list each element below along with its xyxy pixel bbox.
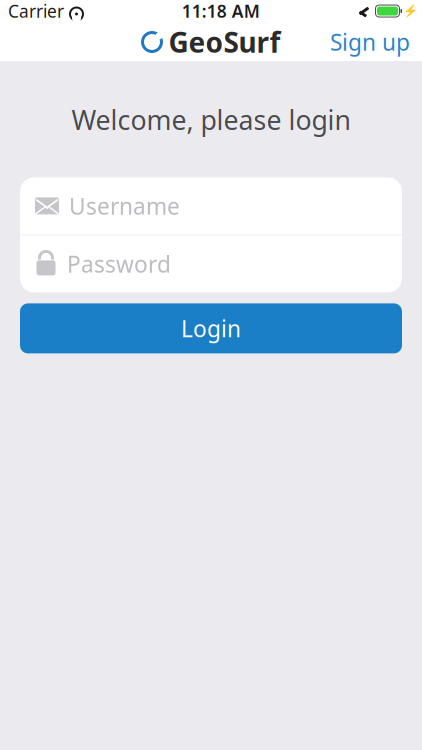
staticText: 11:18 AM — [182, 0, 260, 22]
staticText: Welcome, please login — [71, 102, 350, 137]
staticText: Sign up — [330, 27, 410, 57]
staticText: Password — [67, 249, 171, 279]
button[interactable]: Sign up — [318, 19, 422, 65]
button[interactable]: Username — [20, 177, 402, 234]
button[interactable]: Password — [20, 235, 402, 292]
button[interactable]: Login — [20, 303, 402, 353]
staticText: GeoSurf — [168, 23, 280, 61]
staticText: ⚡ — [403, 4, 418, 18]
staticText: Carrier — [8, 0, 64, 22]
staticText: Login — [181, 313, 241, 343]
staticText: Username — [69, 191, 180, 221]
